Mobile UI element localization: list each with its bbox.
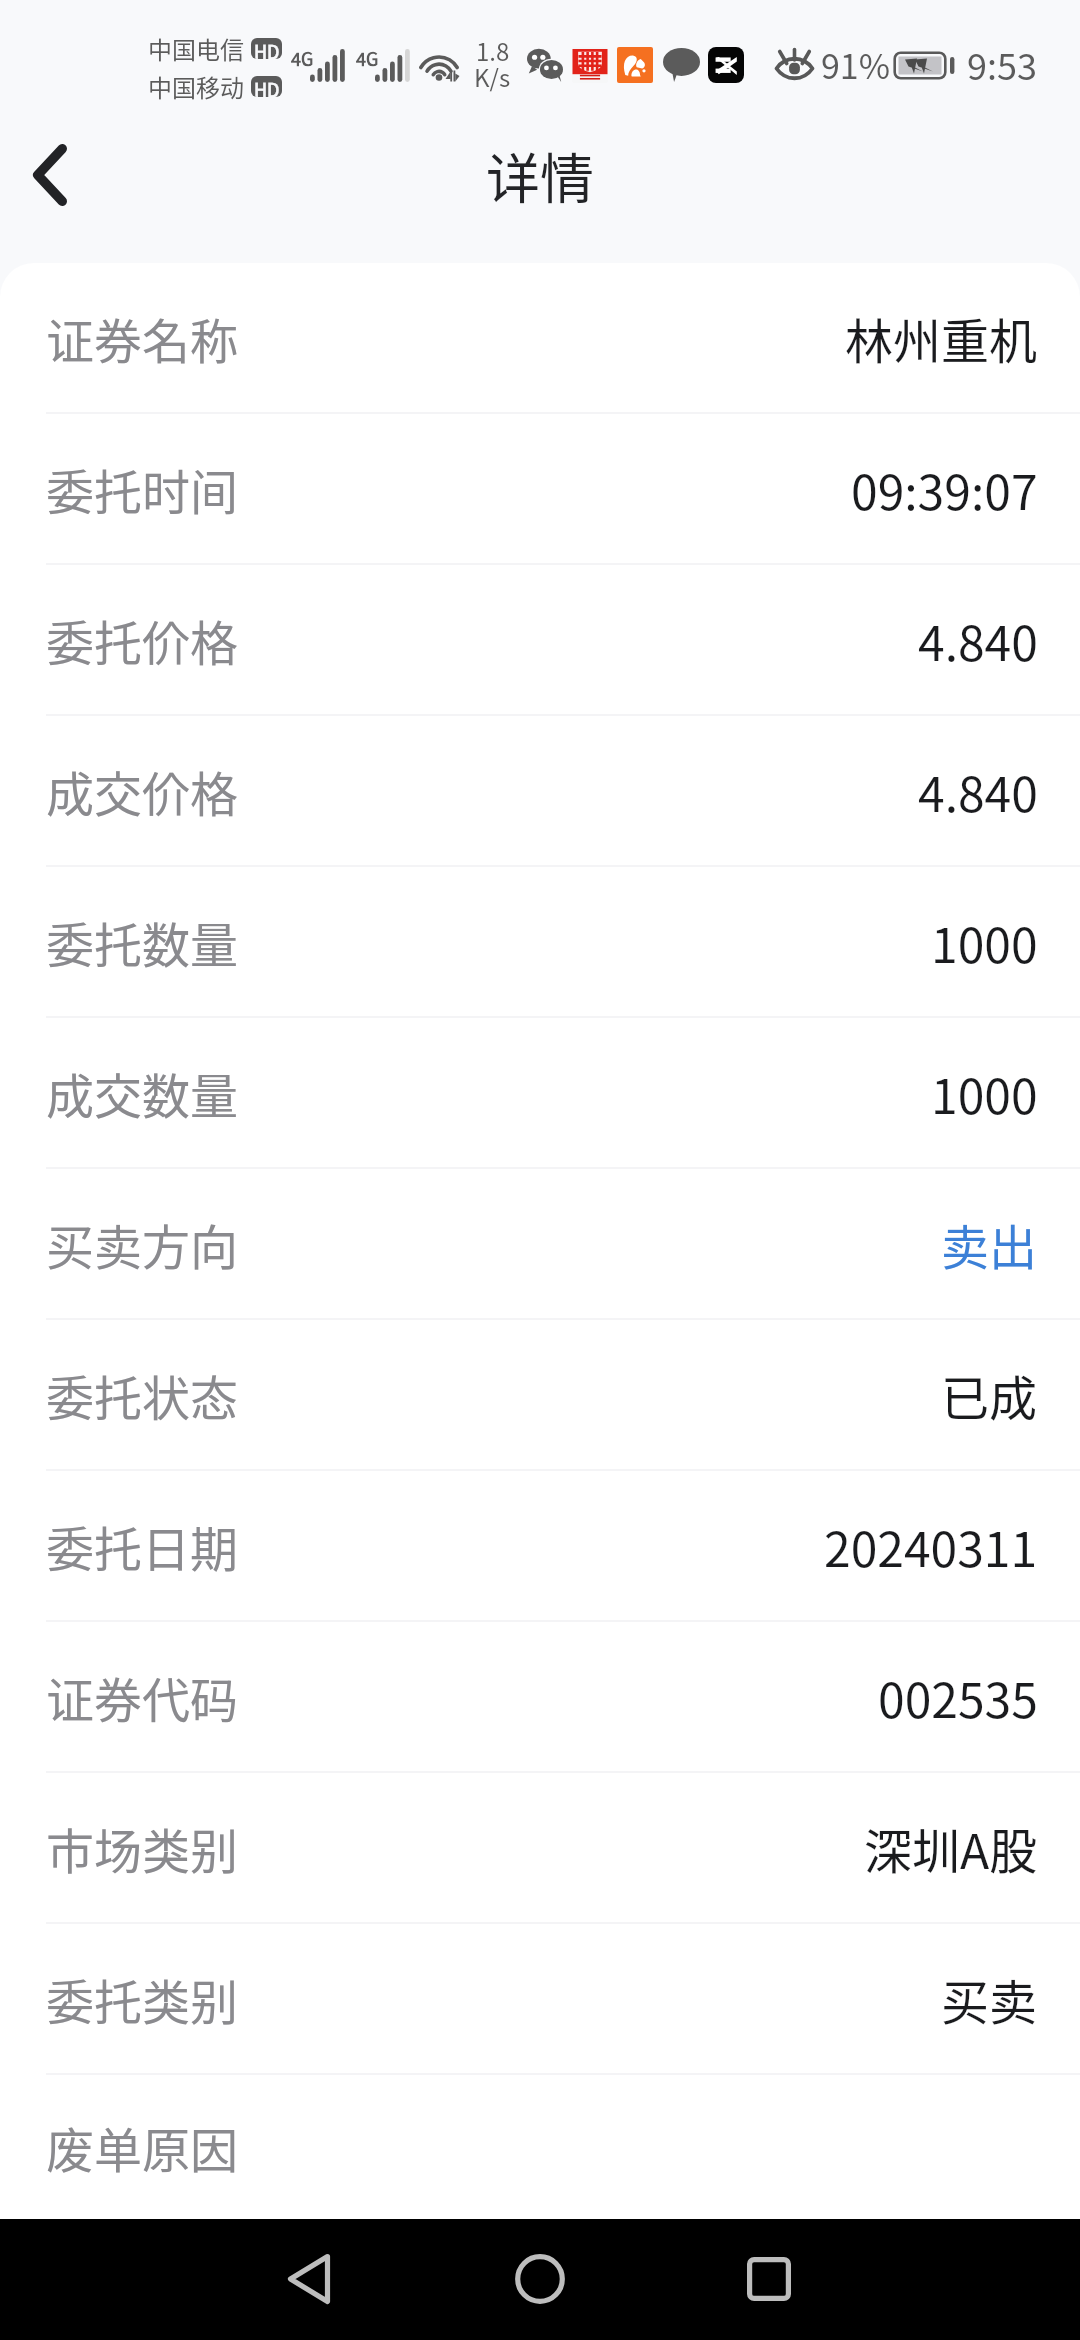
button[interactable]: 委托时间 [0, 414, 1080, 563]
button[interactable]: 废单原因 [0, 2075, 1080, 2219]
staticText: HD [254, 38, 280, 59]
staticText: 002535 [878, 1662, 1038, 1732]
staticText: 市场类别 [46, 1813, 239, 1883]
button[interactable]: 成交价格 [0, 716, 1080, 865]
staticText: 4.840 [918, 756, 1038, 826]
button[interactable]: 委托日期 [0, 1471, 1080, 1620]
button[interactable]: 委托数量 [0, 867, 1080, 1016]
button[interactable]: 委托类别 [0, 1924, 1080, 2073]
staticText: 已成 [941, 1360, 1038, 1430]
staticText: 委托价格 [46, 605, 239, 675]
staticText: 1.8 [476, 33, 510, 68]
button[interactable]: Recents [718, 2218, 820, 2339]
button[interactable]: 市场类别 [0, 1773, 1080, 1922]
button[interactable]: 委托价格 [0, 565, 1080, 714]
staticText: 20240311 [824, 1511, 1038, 1581]
staticText: 证券代码 [46, 1662, 239, 1732]
staticText: 深圳A股 [864, 1813, 1038, 1883]
staticText: 买卖方向 [46, 1209, 239, 1279]
staticText: 09:39:07 [851, 454, 1038, 524]
staticText: 废单原因 [46, 2112, 239, 2182]
staticText: 林州重机 [845, 303, 1038, 373]
staticText: 中国电信 [148, 31, 244, 66]
staticText: 买卖 [941, 1964, 1038, 2034]
staticText: 4.840 [918, 605, 1038, 675]
staticText: 成交数量 [46, 1058, 239, 1128]
button[interactable]: 证券名称 [0, 263, 1080, 412]
staticText: 1000 [931, 907, 1038, 977]
staticText: 成交价格 [46, 756, 239, 826]
button[interactable]: Home [489, 2218, 591, 2339]
staticText: 详情 [486, 136, 594, 214]
button[interactable]: Back [258, 2218, 360, 2339]
staticText: 委托时间 [46, 454, 239, 524]
button[interactable]: Back [0, 119, 106, 231]
staticText: K/s [474, 59, 511, 94]
button[interactable]: 成交数量 [0, 1018, 1080, 1167]
staticText: 4G [356, 45, 379, 71]
staticText: 91% [821, 40, 891, 89]
staticText: 委托状态 [46, 1360, 239, 1430]
staticText: 委托类别 [46, 1964, 239, 2034]
staticText: 卖出 [941, 1209, 1038, 1279]
staticText: 4G [291, 45, 314, 71]
button[interactable]: 买卖方向 [0, 1169, 1080, 1318]
staticText: 1000 [931, 1058, 1038, 1128]
button[interactable]: 委托状态 [0, 1320, 1080, 1469]
staticText: 中国移动 [148, 69, 244, 104]
staticText: 9:53 [967, 38, 1037, 90]
staticText: 证券名称 [46, 303, 239, 373]
button[interactable]: 证券代码 [0, 1622, 1080, 1771]
staticText: 委托数量 [46, 907, 239, 977]
staticText: 委托日期 [46, 1511, 239, 1581]
staticText: HD [254, 76, 280, 97]
